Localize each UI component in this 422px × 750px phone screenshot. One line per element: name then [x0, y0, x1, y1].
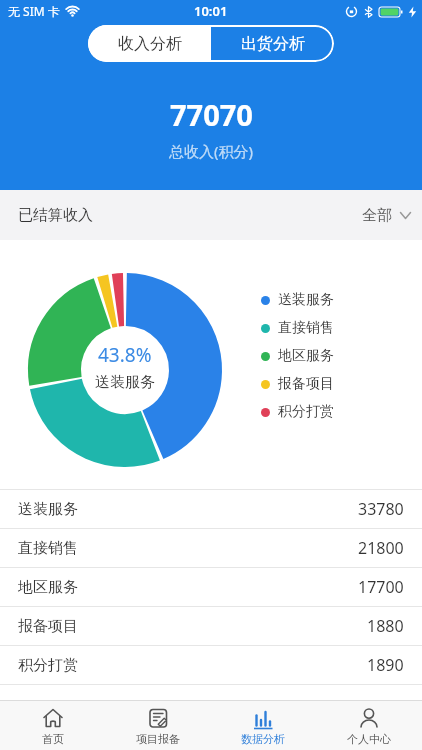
staticText: 直接销售 [18, 539, 78, 558]
staticText: 数据分析 [241, 732, 285, 746]
staticText: 33780 [358, 498, 404, 520]
staticText: 全部 [362, 206, 392, 225]
staticText: 总收入(积分) [169, 141, 254, 161]
staticText: 17700 [358, 576, 404, 598]
button[interactable]: 送装服务 [0, 490, 422, 528]
staticText: 报备项目 [278, 375, 334, 393]
staticText: 地区服务 [278, 347, 334, 365]
staticText: 10:01 [194, 2, 228, 20]
staticText: 项目报备 [136, 732, 180, 746]
staticText: 积分打赏 [278, 403, 334, 421]
button[interactable]: 个人中心 [316, 701, 422, 750]
staticText: 首页 [42, 732, 64, 746]
button[interactable]: 数据分析 [210, 701, 316, 750]
button[interactable]: 全部 [362, 206, 411, 225]
staticText: 送装服务 [95, 373, 155, 392]
staticText: 地区服务 [18, 578, 78, 597]
button[interactable]: 出货分析 [211, 25, 334, 62]
staticText: 送装服务 [278, 291, 334, 309]
button[interactable]: 项目报备 [105, 701, 210, 750]
staticText: 收入分析 [118, 34, 182, 54]
staticText: 1880 [367, 615, 404, 637]
staticText: 已结算收入 [18, 206, 93, 225]
button[interactable]: 直接销售 [0, 529, 422, 567]
button[interactable]: 报备项目 [0, 607, 422, 645]
staticText: 积分打赏 [18, 656, 78, 675]
button[interactable]: 地区服务 [0, 568, 422, 606]
staticText: 个人中心 [347, 732, 391, 746]
staticText: 无 SIM 卡 [8, 3, 60, 19]
staticText: 43.8% [98, 342, 152, 368]
button[interactable]: 首页 [0, 701, 105, 750]
staticText: 报备项目 [18, 617, 78, 636]
button[interactable]: 积分打赏 [0, 646, 422, 684]
staticText: 77070 [170, 95, 253, 134]
staticText: 出货分析 [241, 34, 305, 54]
button[interactable]: 收入分析 [88, 25, 211, 62]
staticText: 直接销售 [278, 319, 334, 337]
staticText: 21800 [358, 537, 404, 559]
staticText: 送装服务 [18, 500, 78, 519]
staticText: 1890 [367, 654, 404, 676]
